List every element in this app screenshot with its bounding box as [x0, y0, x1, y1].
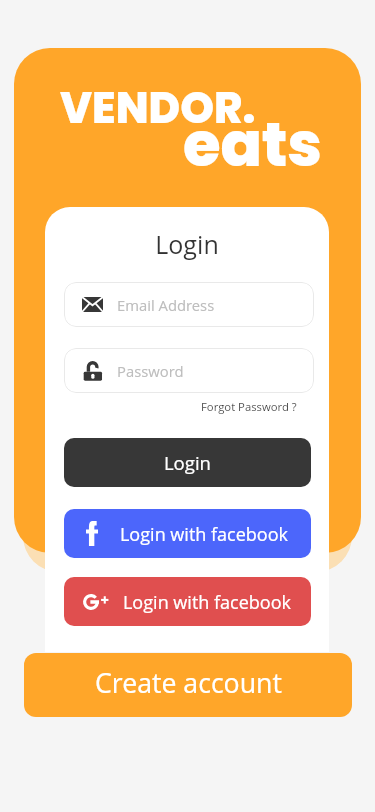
other: Facebook — [86, 521, 98, 546]
staticText: eats — [183, 102, 322, 187]
button[interactable]: Forgot Password ? — [198, 396, 300, 417]
button[interactable]: Email — [64, 282, 314, 327]
button[interactable]: Password — [64, 348, 314, 393]
staticText: VENDOR. — [60, 78, 256, 138]
button[interactable]: Create account — [24, 653, 352, 717]
other: Password — [82, 361, 103, 381]
staticText: Login — [45, 227, 329, 261]
staticText: Create account — [95, 664, 282, 700]
other: Google — [83, 594, 108, 610]
staticText: Login with facebook — [120, 522, 288, 547]
button[interactable]: Google — [64, 577, 311, 626]
staticText: Login — [164, 450, 211, 475]
button[interactable]: Login — [64, 438, 311, 487]
staticText: Password — [117, 361, 184, 381]
staticText: Login with facebook — [123, 590, 291, 615]
staticText: Forgot Password ? — [201, 399, 297, 414]
other: Email — [82, 297, 103, 312]
staticText: Email Address — [117, 295, 215, 315]
button[interactable]: Facebook — [64, 509, 311, 558]
